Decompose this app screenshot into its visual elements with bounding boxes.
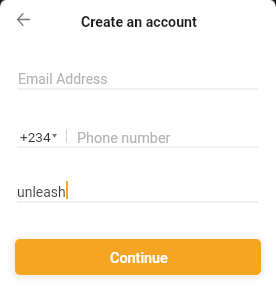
button[interactable]: Back bbox=[10, 6, 36, 32]
staticText: Create an account bbox=[81, 14, 197, 31]
staticText: Phone number bbox=[77, 130, 171, 147]
staticText: Email Address bbox=[18, 71, 108, 87]
staticText: unleash bbox=[17, 184, 66, 200]
staticText: +234 bbox=[20, 129, 51, 145]
button[interactable]: Continue bbox=[15, 239, 261, 275]
staticText: Continue bbox=[110, 250, 168, 267]
